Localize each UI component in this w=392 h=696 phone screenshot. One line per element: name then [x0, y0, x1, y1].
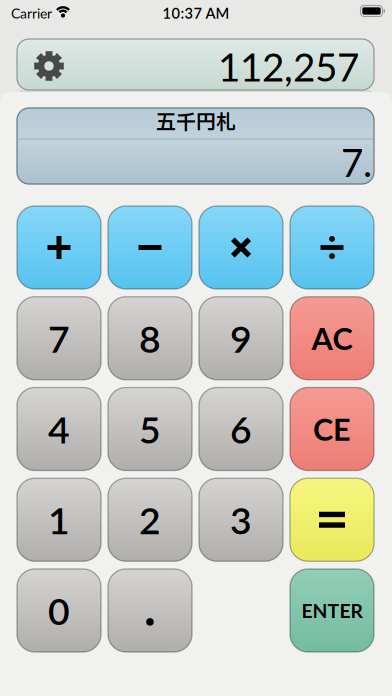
staticText: 8: [139, 316, 161, 361]
button[interactable]: [290, 206, 374, 289]
staticText: 10:37 AM: [162, 4, 229, 22]
button[interactable]: 3: [199, 478, 283, 561]
button[interactable]: [17, 39, 374, 90]
button[interactable]: [108, 569, 192, 652]
staticText: 9: [230, 316, 252, 361]
button[interactable]: 7: [17, 297, 101, 380]
button[interactable]: CE: [290, 387, 374, 470]
staticText: ENTER: [301, 599, 362, 622]
staticText: 7: [48, 316, 70, 361]
button[interactable]: [290, 478, 374, 561]
button[interactable]: [108, 206, 192, 289]
button[interactable]: 8: [108, 297, 192, 380]
staticText: 112,257: [218, 43, 359, 90]
button[interactable]: 9: [199, 297, 283, 380]
button[interactable]: 2: [108, 478, 192, 561]
staticText: 4: [48, 407, 70, 451]
staticText: 3: [230, 497, 252, 542]
staticText: Carrier: [11, 5, 52, 21]
staticText: 1: [48, 497, 70, 542]
staticText: 0: [48, 588, 70, 633]
staticText: 6: [230, 407, 252, 451]
button[interactable]: [32, 49, 66, 83]
staticText: 5: [139, 407, 161, 451]
staticText: CE: [313, 411, 351, 447]
staticText: 2: [139, 497, 161, 542]
staticText: 五千円札: [156, 108, 236, 138]
button[interactable]: 6: [199, 387, 283, 470]
button[interactable]: [17, 206, 101, 289]
button[interactable]: 1: [17, 478, 101, 561]
staticText: AC: [311, 320, 352, 357]
button[interactable]: AC: [290, 297, 374, 380]
button[interactable]: [199, 206, 283, 289]
staticText: 7.: [341, 139, 372, 185]
button[interactable]: 5: [108, 387, 192, 470]
button[interactable]: 4: [17, 387, 101, 470]
button[interactable]: ENTER: [290, 569, 374, 652]
button[interactable]: 0: [17, 569, 101, 652]
